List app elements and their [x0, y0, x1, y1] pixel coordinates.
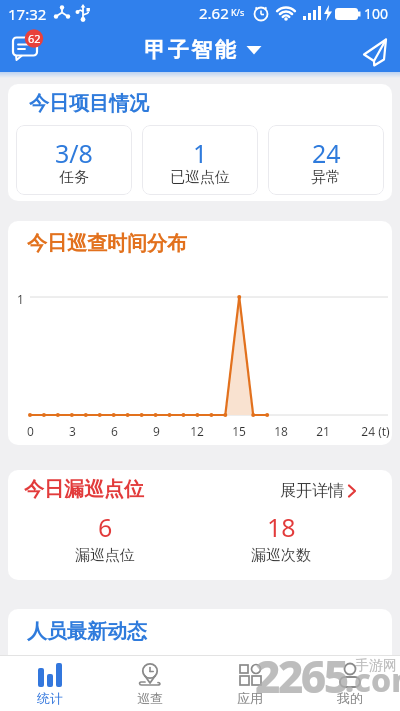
- staticText: K/s: [231, 6, 245, 18]
- staticText: .com: [345, 658, 400, 702]
- staticText: 应用: [237, 690, 263, 706]
- staticText: 今日巡查时间分布: [27, 231, 187, 256]
- staticText: 甲子智能: [143, 37, 237, 63]
- staticText: 统计: [37, 690, 63, 706]
- button[interactable]: 展开详情: [280, 481, 360, 501]
- staticText: 任务: [59, 168, 89, 187]
- staticText: 异常: [311, 168, 341, 187]
- staticText: 100: [364, 4, 389, 23]
- staticText: 24: [312, 136, 341, 170]
- button[interactable]: 我的: [300, 655, 400, 711]
- staticText: 18: [274, 423, 288, 439]
- staticText: 1: [17, 291, 24, 307]
- staticText: 17:32: [8, 4, 47, 24]
- button[interactable]: 62: [8, 28, 52, 72]
- staticText: 6: [98, 510, 113, 544]
- staticText: 24 (t): [361, 423, 390, 439]
- staticText: 展开详情: [280, 481, 344, 501]
- staticText: 已巡点位: [170, 168, 230, 187]
- staticText: 今日漏巡点位: [24, 477, 144, 502]
- staticText: 9: [153, 423, 160, 439]
- staticText: 62: [28, 31, 41, 46]
- staticText: 巡查: [137, 690, 163, 706]
- staticText: 2.62: [199, 3, 229, 23]
- button[interactable]: [358, 34, 392, 68]
- staticText: 6: [111, 423, 118, 439]
- staticText: 21: [316, 423, 330, 439]
- button[interactable]: 24: [268, 125, 384, 195]
- staticText: 12: [190, 423, 204, 439]
- button[interactable]: 甲子智能: [143, 37, 262, 63]
- button[interactable]: 巡查: [100, 655, 200, 711]
- staticText: 今日项目情况: [29, 91, 149, 116]
- staticText: 漏巡次数: [251, 546, 311, 565]
- button[interactable]: 统计: [0, 655, 100, 711]
- staticText: 18: [267, 510, 296, 544]
- staticText: 漏巡点位: [75, 546, 135, 565]
- staticText: 15: [232, 423, 246, 439]
- staticText: 我的: [337, 690, 363, 706]
- staticText: 手游网: [355, 657, 397, 675]
- staticText: 1: [193, 136, 208, 170]
- staticText: 3/8: [55, 136, 93, 170]
- button[interactable]: 3/8: [16, 125, 132, 195]
- staticText: 0: [27, 423, 34, 439]
- staticText: 3: [69, 423, 76, 439]
- button[interactable]: 1: [142, 125, 258, 195]
- button[interactable]: 应用: [200, 655, 300, 711]
- staticText: 2265: [255, 646, 347, 706]
- staticText: 人员最新动态: [27, 619, 147, 644]
